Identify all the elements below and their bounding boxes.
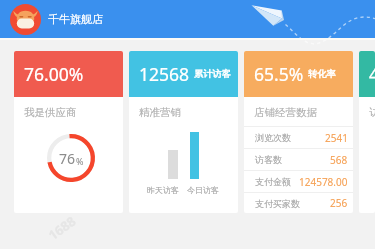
staticText: 12568 <box>139 62 190 86</box>
button[interactable]: 支付金额 <box>244 170 353 192</box>
staticText: 访 <box>369 106 375 119</box>
staticText: 124578.00 <box>299 175 348 189</box>
button[interactable]: 65.5% <box>244 51 353 213</box>
staticText: 256 <box>330 196 348 210</box>
staticText: % <box>76 155 84 167</box>
staticText: 76 <box>59 149 76 168</box>
staticText: 精准营销 <box>139 106 181 119</box>
staticText: 1688 <box>45 212 79 244</box>
staticText: 76.00% <box>24 62 84 86</box>
staticText: 支付买家数 <box>255 198 300 209</box>
staticText: 4 <box>369 62 375 86</box>
staticText: 支付金额 <box>255 176 291 187</box>
staticText: 千牛旗舰店 <box>48 12 103 26</box>
staticText: 昨天访客 <box>147 185 179 195</box>
button[interactable]: 浏览次数 <box>244 126 353 148</box>
staticText: 店铺经营数据 <box>254 106 317 119</box>
staticText: 我是供应商 <box>24 106 77 119</box>
button[interactable]: 4 <box>359 51 375 213</box>
button[interactable]: 12568 <box>129 51 238 213</box>
staticText: 65.5% <box>254 62 304 86</box>
other: Shop logo <box>10 4 41 35</box>
button[interactable]: 访客数 <box>244 148 353 170</box>
staticText: 568 <box>330 153 348 167</box>
staticText: 浏览次数 <box>255 132 291 143</box>
button[interactable]: 支付买家数 <box>244 192 353 213</box>
staticText: 累计访客 <box>194 68 231 80</box>
staticText: 访客数 <box>255 154 282 165</box>
staticText: 今日访客 <box>187 185 219 195</box>
button[interactable]: 76.00% <box>14 51 123 213</box>
staticText: 2541 <box>325 131 348 145</box>
staticText: 转化率 <box>308 68 336 80</box>
